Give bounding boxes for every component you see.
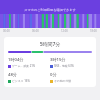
- staticText: 12:00: [61, 29, 68, 33]
- button[interactable]: 0分: [50, 72, 92, 83]
- staticText: SNS・情報 63%: [54, 64, 74, 68]
- button[interactable]: 1時04分: [8, 57, 50, 68]
- button[interactable]: Usage timeline chart: [0, 14, 100, 28]
- button[interactable]: 48分: [8, 72, 50, 83]
- button[interactable]: 5時間7分: [4, 37, 96, 87]
- button[interactable]: 3時15分: [50, 57, 92, 68]
- staticText: ゲーム・娯楽 21%: [12, 64, 36, 68]
- staticText: 00:00: [3, 29, 10, 33]
- staticText: 48分: [8, 72, 17, 78]
- staticText: 06:00: [32, 29, 39, 33]
- staticText: スマホのご利用時間を確認できます: [24, 8, 76, 12]
- staticText: 3時15分: [50, 57, 66, 63]
- staticText: その他の分類: [54, 79, 71, 83]
- staticText: 18:00: [90, 29, 97, 33]
- staticText: 1時04分: [8, 57, 24, 63]
- staticText: 5時間7分: [8, 41, 92, 48]
- staticText: ビジネス 16%: [12, 79, 30, 83]
- staticText: 0分: [50, 72, 57, 78]
